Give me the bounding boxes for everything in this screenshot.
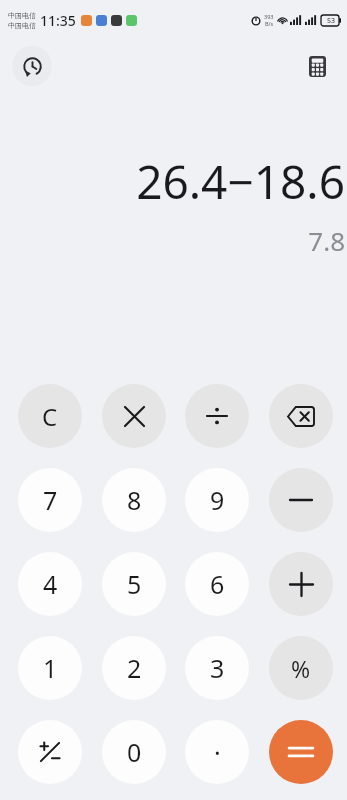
button[interactable]: 5 (102, 552, 166, 616)
staticText: 4 (43, 567, 58, 601)
staticText: 0 (127, 735, 142, 769)
staticText: 393 (264, 13, 274, 20)
button[interactable]: % (269, 636, 333, 700)
button[interactable]: Scientific calculator (297, 46, 337, 86)
staticText: 5 (127, 567, 142, 601)
button[interactable]: Minus (269, 468, 333, 532)
button[interactable]: 1 (18, 636, 82, 700)
staticText: 7 (43, 483, 58, 517)
staticText: 中国电信 (8, 21, 36, 30)
staticText: 8 (127, 483, 142, 517)
staticText: 7.8 (308, 223, 345, 258)
button[interactable]: 7 (18, 468, 82, 532)
button[interactable]: 6 (185, 552, 249, 616)
staticText: 中国电信 (8, 11, 36, 20)
staticText: 2 (127, 651, 142, 685)
button[interactable]: 8 (102, 468, 166, 532)
staticText: 9 (210, 483, 225, 517)
staticText: 26.4−18.6 (136, 150, 345, 213)
button[interactable]: Multiply (102, 384, 166, 448)
staticText: 11:35 (40, 11, 76, 30)
button[interactable]: 3 (185, 636, 249, 700)
staticText: 3 (210, 651, 225, 685)
button[interactable]: 2 (102, 636, 166, 700)
staticText: · (214, 735, 221, 769)
button[interactable]: Divide (185, 384, 249, 448)
button[interactable]: 4 (18, 552, 82, 616)
staticText: 1 (43, 651, 58, 685)
button[interactable]: 9 (185, 468, 249, 532)
staticText: 6 (210, 567, 225, 601)
button[interactable]: History (12, 46, 52, 86)
staticText: % (291, 653, 311, 684)
button[interactable]: Backspace (269, 384, 333, 448)
staticText: 53 (327, 16, 336, 26)
button[interactable]: Plus minus sign (18, 720, 82, 784)
button[interactable]: Plus (269, 552, 333, 616)
staticText: B/s (265, 20, 274, 27)
staticText: C (42, 400, 58, 433)
button[interactable]: 0 (102, 720, 166, 784)
button[interactable]: · (185, 720, 249, 784)
button[interactable]: Equals (269, 720, 333, 784)
button[interactable]: C (18, 384, 82, 448)
